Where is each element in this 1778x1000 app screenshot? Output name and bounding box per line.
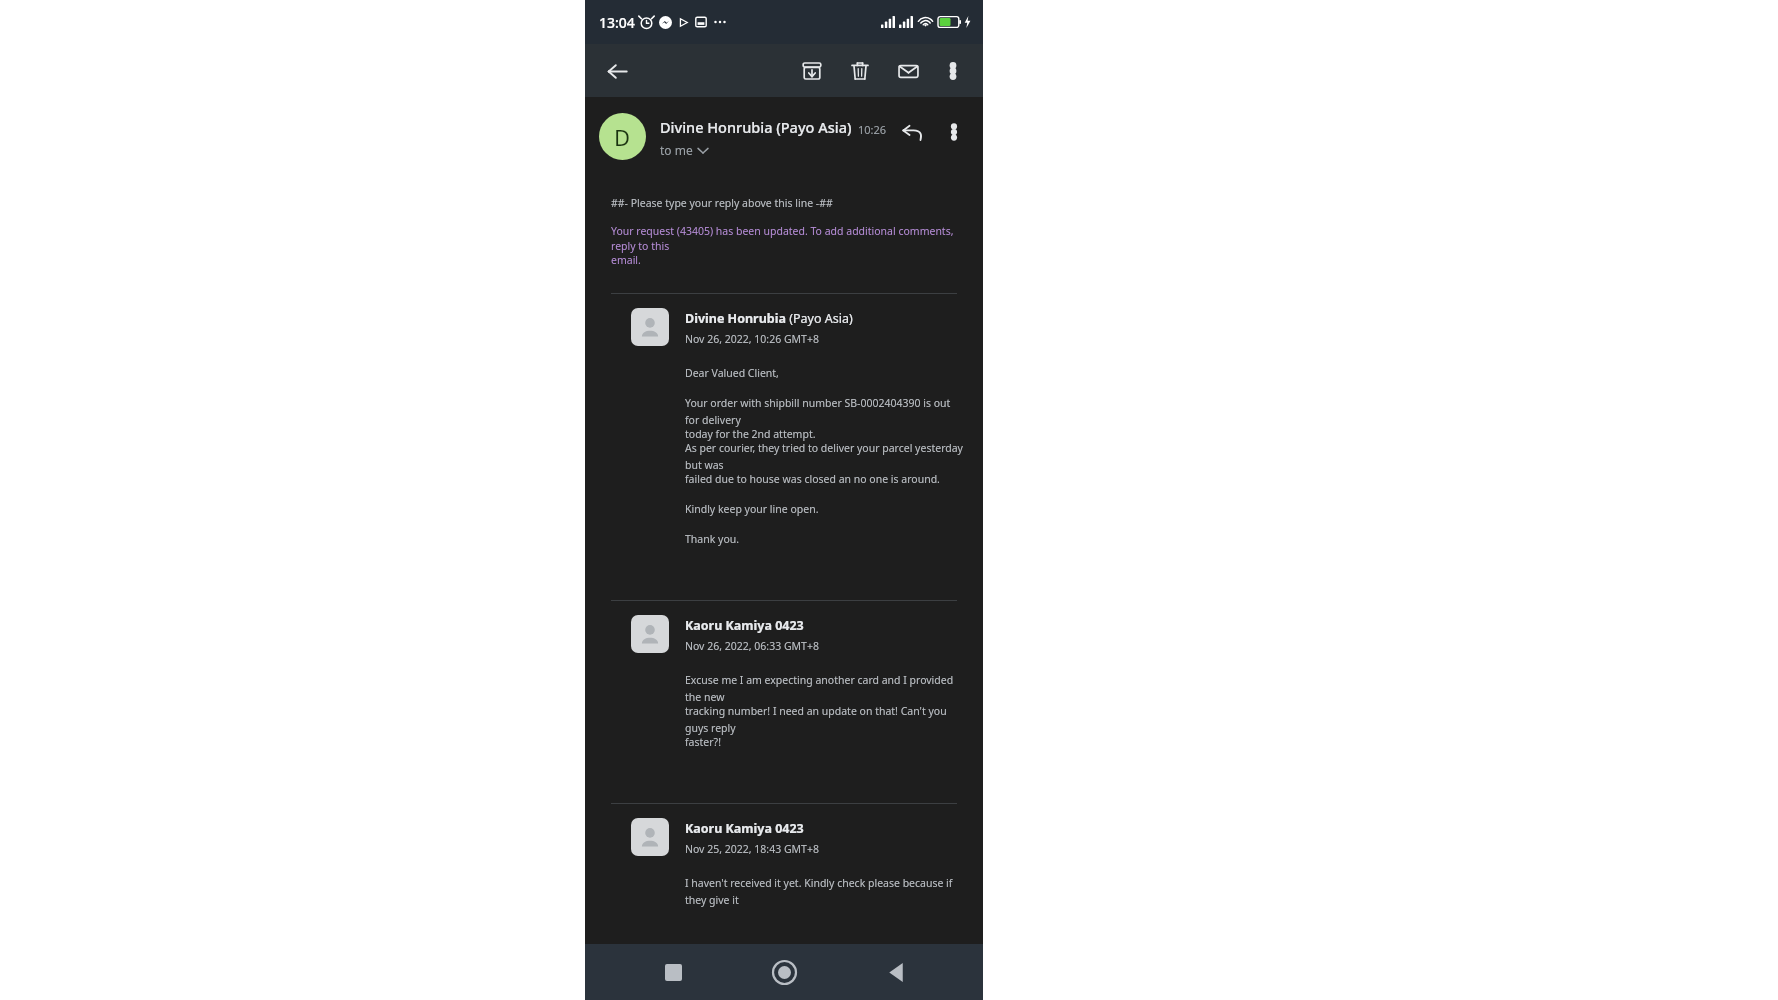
- staticText: Divine Honrubia: [685, 310, 786, 327]
- button[interactable]: More options: [933, 51, 973, 91]
- staticText: Nov 26, 2022, 10:26 GMT+8: [685, 332, 819, 346]
- button[interactable]: Kaoru Kamiya 0423: [631, 818, 969, 856]
- staticText: As per courier, they tried to deliver yo…: [685, 441, 963, 472]
- staticText: Nov 26, 2022, 06:33 GMT+8: [685, 639, 819, 653]
- staticText: Thank you.: [685, 532, 740, 546]
- button[interactable]: More options: [935, 113, 973, 151]
- staticText: Kindly keep your line open.: [685, 502, 819, 516]
- button[interactable]: Archive: [792, 51, 832, 91]
- staticText: to me: [660, 142, 693, 158]
- staticText: Divine Honrubia (Payo Asia): [660, 117, 852, 137]
- staticText: 13:04: [599, 13, 635, 32]
- staticText: (Payo Asia): [786, 310, 853, 327]
- button[interactable]: Back: [597, 51, 637, 91]
- staticText: ##- Please type your reply above this li…: [611, 196, 833, 210]
- staticText: Nov 25, 2022, 18:43 GMT+8: [685, 842, 819, 856]
- button[interactable]: Recents: [649, 948, 697, 996]
- button[interactable]: Sender avatar: [599, 113, 646, 160]
- staticText: today for the 2nd attempt.: [685, 427, 816, 441]
- staticText: Your order with shipbill number SB-00024…: [685, 396, 963, 427]
- staticText: Kaoru Kamiya 0423: [685, 820, 804, 837]
- staticText: D: [614, 122, 631, 152]
- staticText: I haven't received it yet. Kindly check …: [685, 876, 963, 907]
- staticText: Dear Valued Client,: [685, 366, 779, 380]
- staticText: failed due to house was closed an no one…: [685, 472, 940, 486]
- staticText: tracking number! I need an update on tha…: [685, 704, 963, 735]
- staticText: Excuse me I am expecting another card an…: [685, 673, 963, 704]
- button[interactable]: Delete: [840, 51, 880, 91]
- button[interactable]: Mark unread: [888, 51, 928, 91]
- staticText: email.: [611, 253, 641, 267]
- staticText: Kaoru Kamiya 0423: [685, 617, 804, 634]
- button[interactable]: Reply: [893, 113, 931, 151]
- button[interactable]: to me: [660, 142, 708, 158]
- button[interactable]: Home: [760, 948, 808, 996]
- staticText: 10:26: [858, 122, 887, 137]
- button[interactable]: Divine Honrubia: [631, 308, 969, 346]
- button[interactable]: Back: [872, 948, 920, 996]
- staticText: Your request (43405) has been updated. T…: [611, 224, 955, 253]
- button[interactable]: Kaoru Kamiya 0423: [631, 615, 969, 653]
- staticText: faster?!: [685, 735, 721, 749]
